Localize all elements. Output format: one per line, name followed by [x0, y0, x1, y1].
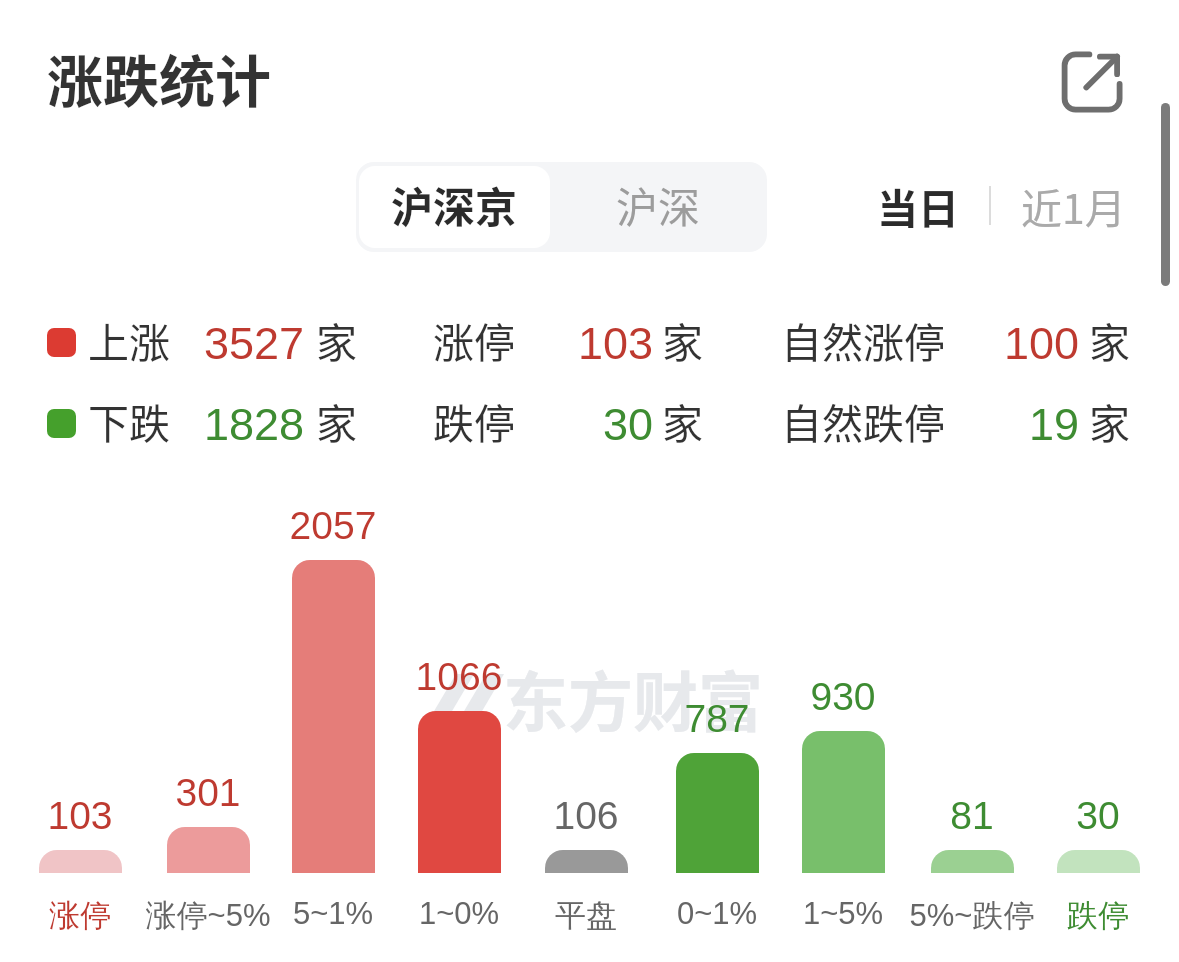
staticText: 家	[316, 391, 357, 450]
staticText: 家	[1089, 310, 1130, 369]
staticText: 家	[316, 310, 357, 369]
staticText: 30	[998, 794, 1179, 838]
staticText: 涨跌统计	[47, 37, 271, 118]
staticText: 3527	[104, 318, 304, 368]
staticText: 家	[662, 310, 703, 369]
staticText: 涨停	[433, 310, 515, 369]
staticText: 跌停	[988, 896, 1179, 935]
staticText: 19	[879, 399, 1079, 449]
staticText: 涨停	[0, 896, 190, 935]
staticText: 103	[453, 318, 653, 368]
staticText: 100	[879, 318, 1079, 368]
staticText: 103	[0, 794, 180, 838]
button[interactable]: 当日	[869, 166, 967, 245]
staticText: 近1月	[1021, 176, 1126, 235]
staticText: 2057	[233, 504, 433, 548]
staticText: 涨停~5%	[98, 896, 318, 935]
staticText: 0~1%	[607, 896, 827, 931]
staticText: 家	[662, 391, 703, 450]
staticText: 1066	[359, 655, 559, 699]
staticText: 1~5%	[733, 896, 953, 931]
staticText: 家	[1089, 391, 1130, 450]
staticText: 上涨	[88, 310, 170, 369]
button[interactable]: 近1月	[1013, 166, 1134, 245]
staticText: 跌停	[433, 391, 515, 450]
button[interactable]: Share	[1048, 40, 1132, 124]
staticText: 106	[486, 794, 686, 838]
staticText: 1~0%	[349, 896, 569, 931]
button[interactable]: 沪深	[554, 166, 763, 248]
staticText: 沪深京	[391, 174, 518, 235]
staticText: 30	[453, 399, 653, 449]
staticText: 5%~跌停	[862, 896, 1082, 935]
staticText: 自然涨停	[781, 310, 945, 369]
staticText: 5~1%	[223, 896, 443, 931]
staticText: 下跌	[88, 391, 170, 450]
staticText: 301	[108, 771, 308, 815]
staticText: 81	[872, 794, 1072, 838]
button[interactable]: 沪深京	[359, 166, 550, 248]
staticText: 787	[617, 697, 817, 741]
staticText: 930	[743, 675, 943, 719]
staticText: 自然跌停	[781, 391, 945, 450]
staticText: 1828	[104, 399, 304, 449]
staticText: 平盘	[476, 896, 696, 935]
staticText: 沪深	[616, 174, 701, 235]
staticText: 东方财富	[503, 651, 764, 745]
staticText: 当日	[877, 176, 959, 235]
